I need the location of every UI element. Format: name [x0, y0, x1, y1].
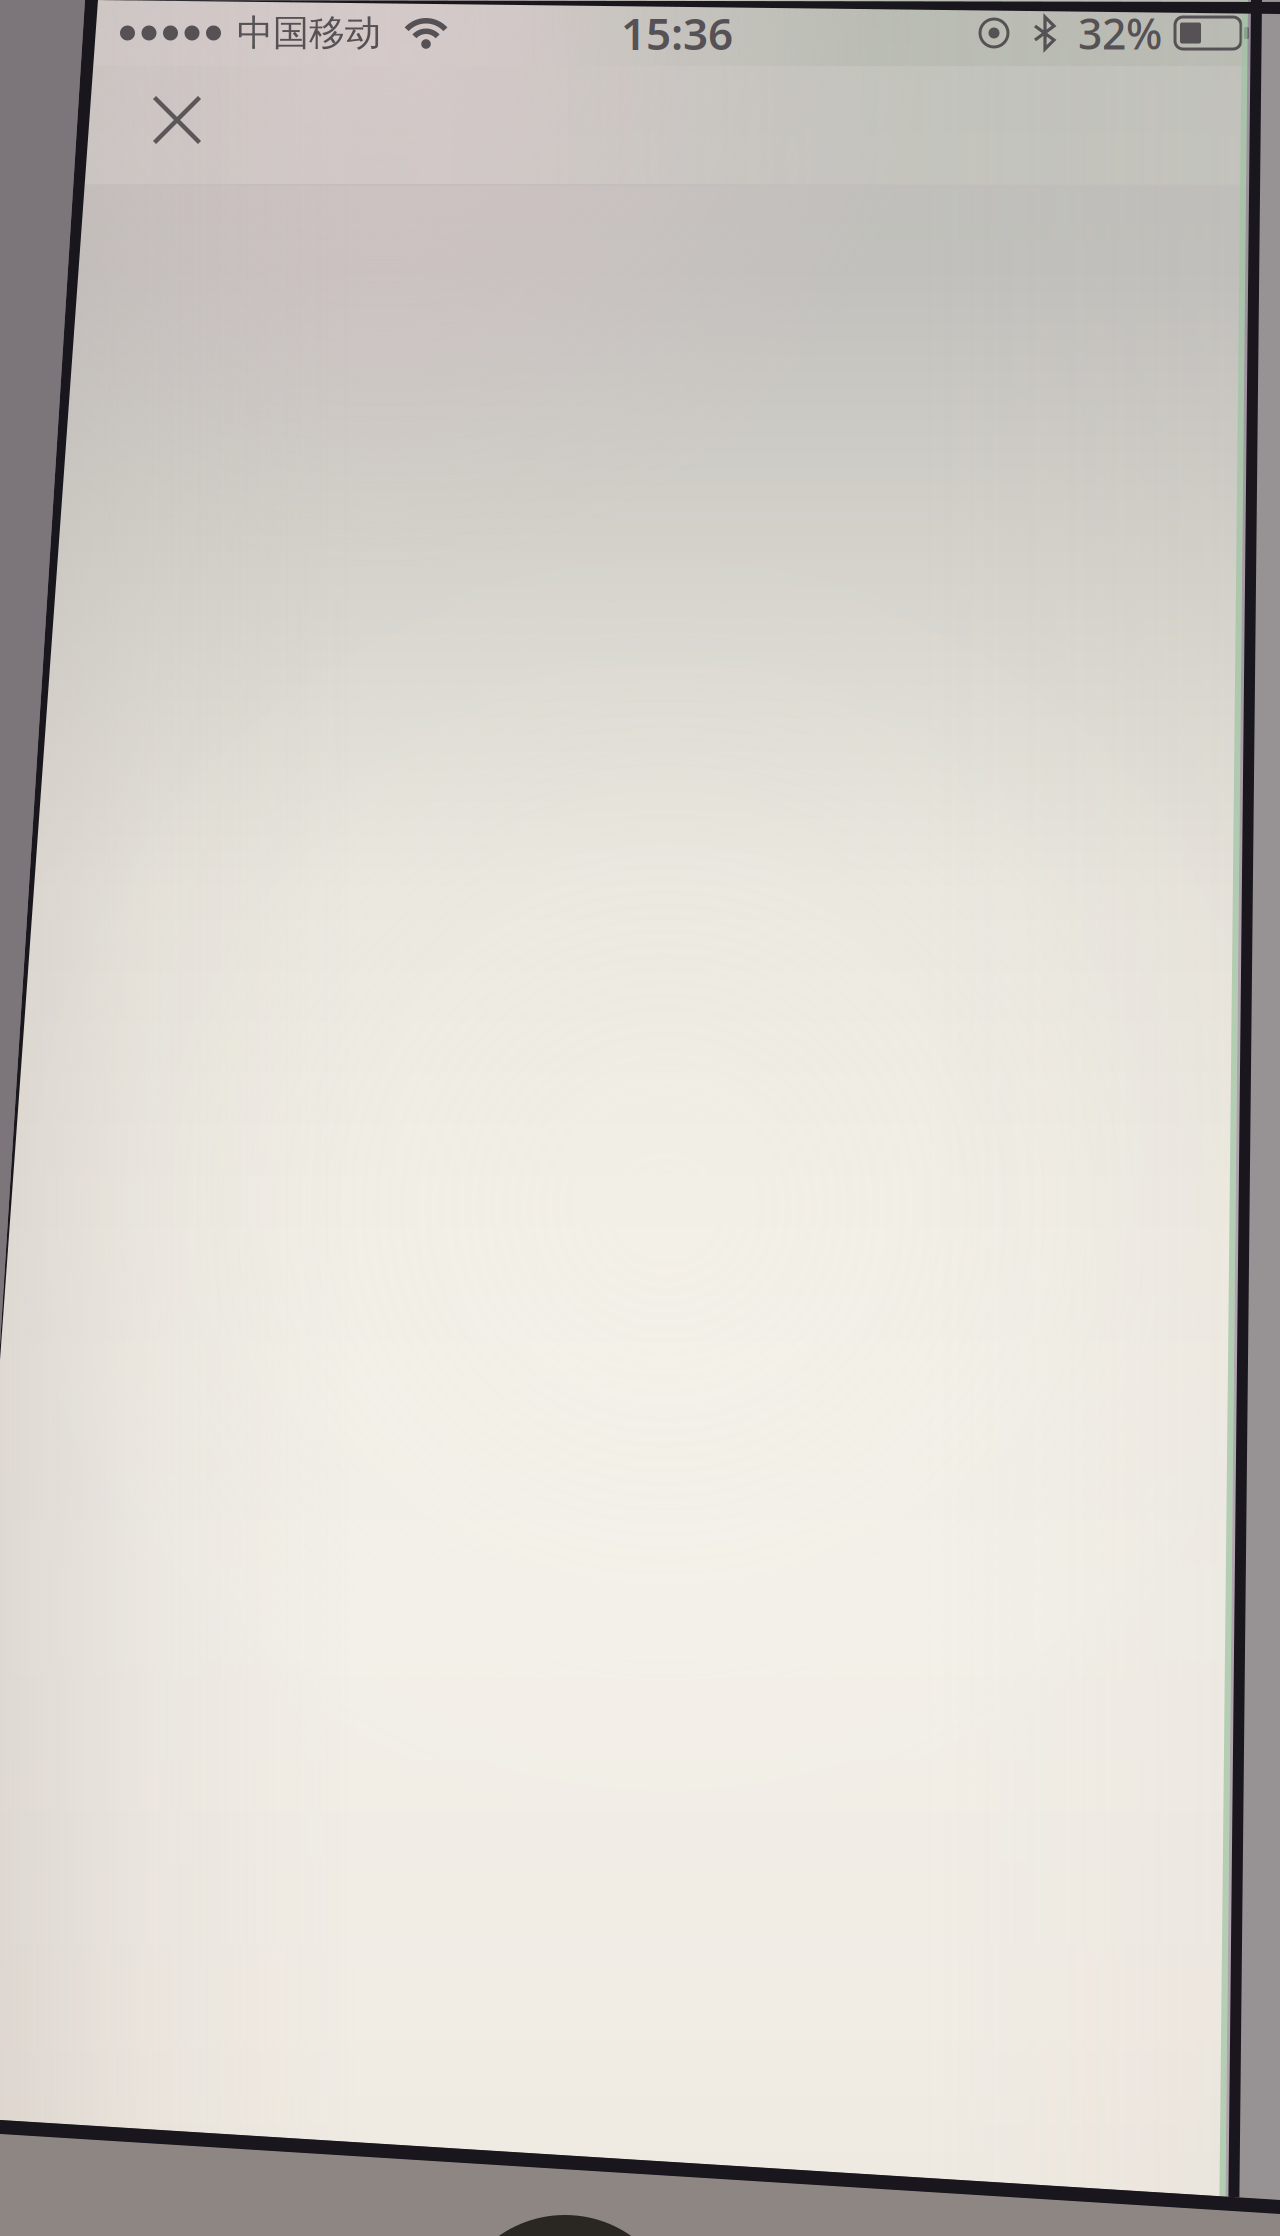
staticText: 15:36 — [621, 4, 733, 62]
button[interactable]: Close — [125, 69, 229, 181]
staticText: 32% — [1078, 5, 1162, 61]
staticText: 中国移动 — [237, 11, 381, 55]
